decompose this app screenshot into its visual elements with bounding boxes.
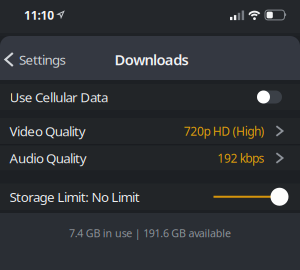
staticText: 7.4 GB in use | 191.6 GB available	[69, 226, 231, 240]
button[interactable]: Audio Quality	[0, 145, 300, 170]
staticText: 192 kbps	[217, 150, 264, 166]
button[interactable]: Video Quality	[0, 118, 300, 144]
staticText: Video Quality	[9, 122, 86, 140]
button[interactable]: Storage Limit slider	[213, 188, 288, 206]
staticText: Downloads	[114, 50, 189, 69]
staticText: Use Cellular Data	[9, 88, 108, 106]
staticText: Audio Quality	[9, 149, 87, 167]
button[interactable]: Use Cellular Data	[257, 90, 282, 103]
staticText: Settings	[19, 51, 65, 68]
staticText: 720p HD (High)	[184, 123, 264, 139]
button[interactable]: Back to Settings	[0, 45, 65, 74]
staticText: Storage Limit: No Limit	[9, 188, 140, 206]
staticText: 11:10	[24, 7, 54, 23]
